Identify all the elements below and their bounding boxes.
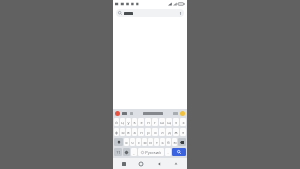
button[interactable]: Backspace xyxy=(178,138,186,146)
staticText: ь xyxy=(161,140,164,145)
button[interactable]: т xyxy=(154,138,159,146)
staticText: х xyxy=(182,120,185,125)
button[interactable]: Emoji xyxy=(180,111,185,116)
staticText: р xyxy=(147,130,150,135)
button[interactable]: е xyxy=(138,118,144,126)
staticText: л xyxy=(161,130,164,135)
button[interactable]: х xyxy=(180,118,186,126)
staticText: ф xyxy=(115,130,118,135)
staticText: ш xyxy=(160,120,164,125)
staticText: в xyxy=(127,130,130,135)
button[interactable] xyxy=(122,112,127,115)
staticText: т xyxy=(156,140,158,145)
staticText: м xyxy=(143,140,147,145)
button[interactable]: л xyxy=(159,128,165,136)
button[interactable]: щ xyxy=(166,118,172,126)
staticText: г xyxy=(154,120,156,125)
staticText: щ xyxy=(167,120,171,125)
staticText: ч xyxy=(131,140,134,145)
staticText: б xyxy=(167,140,170,145)
staticText: с xyxy=(138,140,140,145)
staticText: п xyxy=(140,130,143,135)
button[interactable]: Hide keyboard xyxy=(169,158,183,169)
button[interactable]: н xyxy=(145,118,151,126)
button[interactable]: в xyxy=(126,128,131,136)
button[interactable]: р xyxy=(145,128,151,136)
button[interactable]: г xyxy=(152,118,158,126)
staticText: и xyxy=(149,140,152,145)
staticText: ю xyxy=(173,140,177,145)
button[interactable]: м xyxy=(142,138,147,146)
staticText: я xyxy=(125,140,128,145)
button[interactable]: б xyxy=(166,138,171,146)
button[interactable]: э xyxy=(180,128,186,136)
button[interactable]: й xyxy=(114,118,119,126)
button[interactable]: ь xyxy=(160,138,165,146)
button[interactable]: у xyxy=(126,118,131,126)
staticText: ц xyxy=(121,120,124,125)
staticText: ж xyxy=(174,130,178,135)
button[interactable]: п xyxy=(138,128,144,136)
button[interactable]: Shift xyxy=(114,138,123,146)
staticText: , xyxy=(133,150,135,155)
button[interactable]: Voice search xyxy=(116,9,184,17)
staticText: . xyxy=(167,150,169,155)
button[interactable]: и xyxy=(148,138,153,146)
button[interactable]: Recents xyxy=(117,158,131,169)
button[interactable]: Search xyxy=(172,148,186,156)
staticText: н xyxy=(147,120,150,125)
button[interactable]: ы xyxy=(120,128,125,136)
staticText: к xyxy=(133,120,136,125)
button[interactable]: Keyboard assistant xyxy=(115,111,120,116)
button[interactable]: Русский xyxy=(138,148,164,156)
button[interactable]: ш xyxy=(159,118,165,126)
staticText: д xyxy=(168,130,171,135)
staticText: а xyxy=(133,130,136,135)
button[interactable]: ч xyxy=(130,138,135,146)
button[interactable]: Settings xyxy=(123,148,130,156)
button[interactable]: Home xyxy=(134,158,148,169)
button[interactable]: к xyxy=(132,118,137,126)
staticText: э xyxy=(182,130,184,135)
button[interactable]: Back xyxy=(152,158,166,169)
button[interactable]: я xyxy=(124,138,129,146)
staticText: ?1 xyxy=(116,150,121,155)
button[interactable]: ц xyxy=(120,118,125,126)
button[interactable]: Voice search xyxy=(178,11,182,15)
button[interactable]: о xyxy=(152,128,158,136)
button[interactable]: . xyxy=(165,148,171,156)
staticText: е xyxy=(140,120,143,125)
button[interactable]: з xyxy=(173,118,179,126)
button[interactable]: а xyxy=(132,128,137,136)
staticText: у xyxy=(127,120,130,125)
staticText: Русский xyxy=(145,150,161,155)
button[interactable]: ж xyxy=(173,128,179,136)
button[interactable]: ю xyxy=(172,138,177,146)
button[interactable]: с xyxy=(136,138,141,146)
button[interactable]: , xyxy=(131,148,137,156)
staticText: з xyxy=(175,120,177,125)
staticText: ы xyxy=(121,130,125,135)
button[interactable]: д xyxy=(166,128,172,136)
button[interactable]: ?1 xyxy=(114,148,122,156)
button[interactable]: ф xyxy=(114,128,119,136)
staticText: й xyxy=(115,120,118,125)
staticText: о xyxy=(154,130,157,135)
